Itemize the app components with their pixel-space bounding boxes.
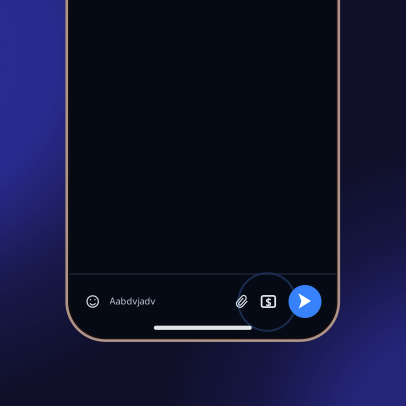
staticText: Aabdvjadv [109,295,155,307]
button[interactable]: Emoji [78,284,108,318]
staticText: $ [265,294,271,309]
button[interactable]: Send money [253,284,283,318]
button[interactable]: Send [286,283,323,320]
button[interactable]: Attach [228,284,256,318]
